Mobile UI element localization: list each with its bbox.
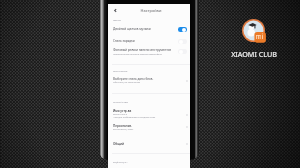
staticText: Настройки (110, 8, 192, 13)
button[interactable]: Open (185, 113, 189, 117)
button[interactable]: Toggle (178, 49, 187, 54)
staticText: Общий (113, 142, 124, 146)
button[interactable]: Xiaomi Club (242, 19, 265, 42)
staticText: Переключение панели в тёмный режим фона (113, 53, 162, 56)
staticText: Имя для отображения в соседних сетях (113, 116, 156, 119)
staticText: XIAOMI CLUB (219, 49, 289, 59)
staticText: ЖЕСТЫ (113, 18, 122, 21)
button[interactable]: Open (185, 125, 189, 129)
staticText: ЭКРАН БЛОК. (113, 69, 128, 72)
staticText: Фоновый режим панели инструментов (113, 48, 172, 52)
button[interactable]: Back (109, 5, 121, 16)
button[interactable]: Open (185, 142, 189, 146)
staticText: Персонализ. (113, 124, 132, 128)
staticText: Обычный, по умолчанию (113, 81, 141, 84)
staticText: Выберите стиль даты блок. (113, 77, 154, 81)
staticText: УСТРОЙСТВО (113, 100, 128, 103)
staticText: Двойной щелчок музыки (113, 27, 151, 31)
staticText: Все регионы, темы (113, 128, 134, 131)
button[interactable]: Toggle (178, 39, 187, 44)
button[interactable]: Toggle (178, 27, 187, 32)
staticText: ЕЩЁ ОПЦИИ (113, 160, 128, 163)
button[interactable]: Open (185, 79, 189, 83)
staticText: Стиль зарядки (113, 39, 135, 43)
staticText: Имя устр-ва (113, 109, 132, 113)
staticText: Redmi Note 8 (113, 113, 127, 116)
